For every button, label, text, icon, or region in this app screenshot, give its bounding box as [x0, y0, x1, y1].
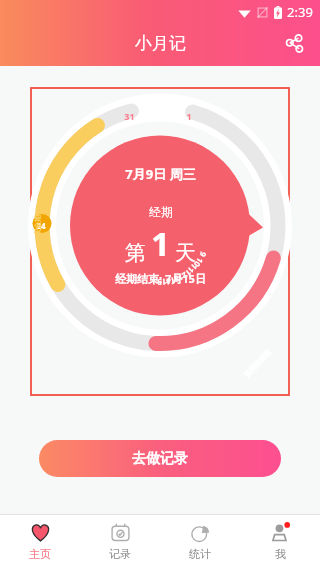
staticText: 14 [165, 275, 177, 288]
staticText: 11 [186, 261, 200, 276]
staticText: 7月9日 周三 [125, 165, 196, 183]
staticText: 13 [172, 271, 186, 286]
staticText: 去做记录 [132, 450, 188, 468]
staticText: 15 [157, 277, 167, 288]
staticText: 31 [124, 110, 135, 122]
staticText: 小月记 [135, 33, 186, 54]
staticText: 1 [151, 221, 170, 266]
staticText: 我 [275, 547, 286, 561]
staticText: 经期 [149, 204, 173, 219]
staticText: 1 [186, 110, 192, 122]
staticText: 经期结束: 7月15日 [115, 271, 206, 286]
button[interactable]: 统计 [160, 515, 240, 568]
staticText: 2:39 [287, 3, 313, 21]
staticText: 主页 [29, 547, 51, 561]
staticText: 记录 [109, 547, 131, 561]
staticText: 天 [175, 240, 196, 266]
staticText: 统计 [189, 547, 211, 561]
staticText: 第 [125, 240, 146, 266]
staticText: 10 [192, 255, 206, 270]
button[interactable]: 记录 [80, 515, 160, 568]
button[interactable]: 我 [240, 515, 320, 568]
button[interactable]: 主页 [0, 515, 80, 568]
staticText: 安全期 [33, 215, 42, 236]
staticText: 24 [36, 220, 46, 231]
staticText: 9 [197, 250, 210, 259]
button[interactable]: 去做记录 [39, 440, 281, 477]
button[interactable]: Share [276, 24, 314, 62]
staticText: 12 [180, 267, 194, 282]
